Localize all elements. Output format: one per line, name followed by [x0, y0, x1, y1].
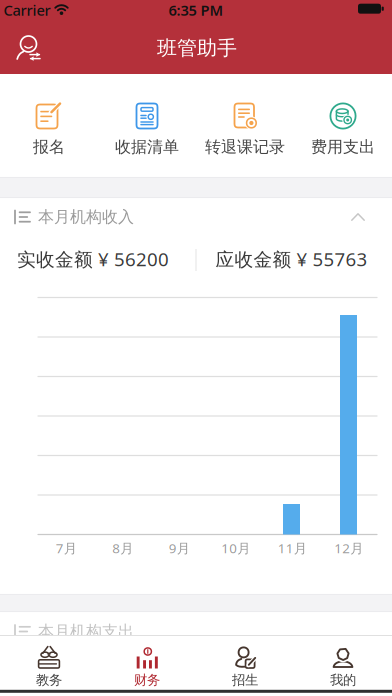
staticText: 实收金额 ¥ 56200: [17, 247, 169, 271]
button[interactable]: 切换账号: [8, 28, 52, 72]
staticText: 班管助手: [157, 36, 237, 60]
staticText: 收据清单: [115, 137, 179, 157]
button[interactable]: 财务: [98, 635, 196, 696]
staticText: 财务: [134, 672, 160, 688]
staticText: 本月机构收入: [38, 207, 134, 227]
staticText: 应收金额 ¥ 55763: [215, 247, 367, 271]
staticText: 我的: [330, 672, 356, 688]
staticText: 本月机构支出: [38, 622, 134, 641]
staticText: 9月: [169, 539, 190, 557]
button[interactable]: 本月机构收入: [0, 197, 392, 236]
staticText: 招生: [232, 672, 258, 688]
button[interactable]: 费用支出: [294, 74, 392, 177]
staticText: 12月: [334, 539, 363, 557]
button[interactable]: 我的: [294, 635, 392, 696]
staticText: 8月: [112, 539, 133, 557]
staticText: 10月: [221, 539, 250, 557]
staticText: 费用支出: [311, 137, 375, 157]
button[interactable]: 转退课记录: [196, 74, 294, 177]
staticText: 7月: [56, 539, 77, 557]
staticText: 报名: [33, 137, 65, 157]
staticText: 转退课记录: [205, 137, 285, 157]
button[interactable]: 收据清单: [98, 74, 196, 177]
staticText: 11月: [278, 539, 307, 557]
button[interactable]: 招生: [196, 635, 294, 696]
staticText: Carrier: [3, 0, 50, 20]
staticText: 教务: [36, 672, 62, 688]
button[interactable]: 报名: [0, 74, 98, 177]
button[interactable]: 本月机构支出: [0, 612, 392, 651]
staticText: 6:35 PM: [168, 0, 223, 20]
button[interactable]: 教务: [0, 635, 98, 696]
